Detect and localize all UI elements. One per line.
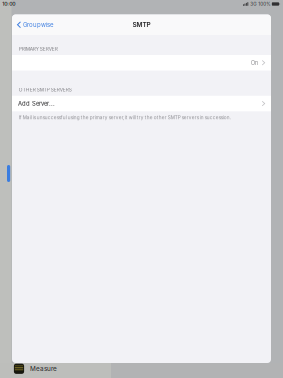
button[interactable]: Add Server... xyxy=(12,96,271,111)
staticText: OTHER SMTP SERVERS xyxy=(19,87,72,93)
staticText: Groupwise xyxy=(23,21,53,28)
button[interactable]: Measure xyxy=(0,363,111,378)
staticText: Add Server... xyxy=(18,100,55,107)
staticText: 100% xyxy=(258,1,270,7)
staticText: SMTP xyxy=(132,21,150,29)
button[interactable]: On xyxy=(12,55,271,70)
staticText: 10:00 xyxy=(2,1,15,7)
staticText: If Mail is unsuccessful using the primar… xyxy=(19,115,231,120)
staticText: PRIMARY SERVER xyxy=(19,46,58,52)
staticText: On xyxy=(251,59,258,66)
staticText: Measure xyxy=(30,365,57,373)
staticText: 3G xyxy=(250,1,256,7)
button[interactable]: Groupwise xyxy=(12,14,56,35)
